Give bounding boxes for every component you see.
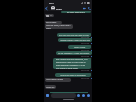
button[interactable]: Send (86, 93, 91, 98)
staticText: But i would like the response, is it bec… (56, 58, 88, 69)
staticText: Was i'm sorry, i like u but i don't want… (46, 24, 72, 29)
button[interactable]: Back (44, 5, 49, 11)
staticText: Delivered (81, 36, 90, 38)
staticText: its okay dont worry (67, 11, 86, 13)
button[interactable]: Sent message (53, 58, 91, 69)
button[interactable]: Sent message (57, 33, 91, 37)
staticText: You're not ugly or whatever (60, 74, 86, 77)
staticText: just say you find me ugly or shit (59, 34, 89, 37)
button[interactable]: Sent message (55, 73, 91, 77)
staticText: Delivered (81, 69, 90, 71)
button[interactable]: Text message (51, 93, 76, 98)
staticText: Emily (56, 7, 63, 10)
staticText: Its ok happens :/ i took my lesson (58, 52, 90, 55)
staticText: Delivered (81, 55, 90, 57)
staticText: Delivered (81, 42, 90, 44)
button[interactable]: Contact photo (51, 6, 55, 10)
button[interactable]: Voice message (81, 93, 86, 98)
button[interactable]: Video call (82, 5, 87, 11)
button[interactable]: Sent message (58, 38, 92, 42)
button[interactable]: Call (87, 5, 92, 11)
button[interactable]: Received message (45, 21, 62, 24)
staticText: Delivered (81, 77, 90, 79)
button[interactable]: Add attachment (45, 93, 50, 98)
button[interactable]: Sent message (68, 45, 91, 49)
staticText: ok (50, 14, 53, 17)
staticText: Delivered (81, 49, 90, 51)
staticText: i knew it when i tried to kiss you (60, 39, 90, 42)
staticText: I just didn't i enjoy having sex ex (46, 78, 70, 82)
staticText: 9:41 (49, 1, 54, 4)
button[interactable]: Sent message (56, 51, 92, 55)
staticText: What a cunt (74, 46, 86, 49)
button[interactable]: Sent message (61, 11, 91, 13)
button[interactable]: Received message (45, 78, 71, 82)
staticText: Sorry been busy (46, 21, 61, 24)
button[interactable]: Received message (45, 85, 56, 89)
button[interactable]: Emoji (76, 93, 81, 98)
button[interactable]: Received photo (45, 14, 54, 17)
staticText: That's all (46, 86, 55, 89)
button[interactable]: Received message (45, 24, 73, 29)
